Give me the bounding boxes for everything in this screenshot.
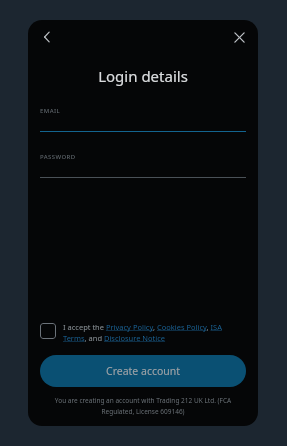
staticText: I accept the Privacy Policy, Cookies Pol… xyxy=(63,322,246,343)
staticText: Login details xyxy=(28,66,258,86)
button[interactable]: I accept the Privacy Policy, Cookies Pol… xyxy=(40,322,246,343)
button[interactable]: PASSWORD xyxy=(40,153,246,178)
staticText: You are creating an account with Trading… xyxy=(46,396,240,416)
button[interactable]: Create account xyxy=(40,355,246,387)
button[interactable]: Close xyxy=(226,24,252,50)
staticText: EMAIL xyxy=(40,107,61,115)
staticText: PASSWORD xyxy=(40,153,76,161)
button[interactable]: EMAIL xyxy=(40,107,246,132)
button[interactable]: Back xyxy=(34,24,60,50)
staticText: Create account xyxy=(106,364,181,378)
